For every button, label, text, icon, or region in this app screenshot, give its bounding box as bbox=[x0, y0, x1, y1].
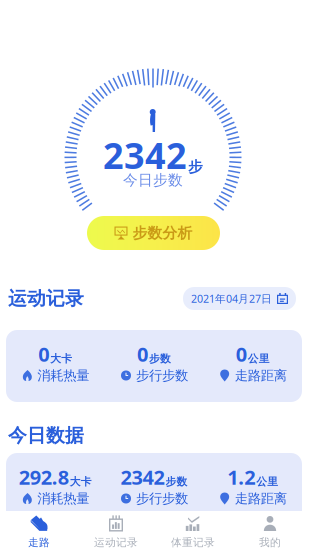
staticText: 2342 bbox=[103, 131, 187, 179]
staticText: 我的 bbox=[259, 536, 281, 549]
staticText: 步行步数 bbox=[136, 490, 188, 507]
staticText: 2021年04月27日 bbox=[191, 291, 272, 306]
staticText: 步行步数 bbox=[136, 367, 188, 384]
staticText: 0 bbox=[38, 341, 49, 367]
staticText: 步数 bbox=[165, 475, 187, 488]
staticText: 消耗热量 bbox=[37, 490, 89, 507]
staticText: 292.8 bbox=[19, 464, 69, 490]
staticText: 步数分析 bbox=[132, 224, 192, 242]
staticText: 消耗热量 bbox=[37, 367, 89, 384]
staticText: 大卡 bbox=[50, 352, 72, 365]
staticText: 公里 bbox=[256, 475, 278, 488]
button[interactable]: 2021年04月27日 bbox=[183, 287, 296, 310]
button[interactable]: 我的 bbox=[231, 511, 308, 550]
staticText: 步数 bbox=[149, 352, 171, 365]
staticText: 公里 bbox=[248, 352, 270, 365]
staticText: 走路距离 bbox=[235, 490, 287, 507]
staticText: 步 bbox=[188, 158, 203, 176]
staticText: 运动记录 bbox=[8, 287, 84, 310]
staticText: 0 bbox=[236, 341, 247, 367]
button[interactable]: 走路 bbox=[0, 511, 77, 550]
staticText: 走路距离 bbox=[235, 367, 287, 384]
staticText: 今日步数 bbox=[123, 171, 183, 189]
staticText: 2342 bbox=[120, 464, 164, 490]
staticText: 今日数据 bbox=[8, 424, 84, 447]
staticText: 走路 bbox=[28, 536, 50, 549]
button[interactable]: 体重记录 bbox=[154, 511, 231, 550]
staticText: 体重记录 bbox=[171, 536, 215, 549]
staticText: 1.2 bbox=[227, 464, 255, 490]
staticText: 大卡 bbox=[70, 475, 92, 488]
button[interactable]: 运动记录 bbox=[77, 511, 154, 550]
staticText: 0 bbox=[137, 341, 148, 367]
staticText: 运动记录 bbox=[94, 536, 138, 549]
button[interactable]: 步数分析 bbox=[87, 216, 220, 250]
